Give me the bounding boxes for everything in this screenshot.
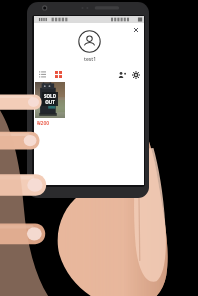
staticText: ₩200	[37, 120, 50, 127]
staticText: test1	[84, 56, 96, 63]
button[interactable]: Add friend	[116, 69, 127, 80]
staticText: OUT	[45, 99, 55, 105]
button[interactable]: Grid view	[53, 69, 64, 80]
button[interactable]: List view	[37, 69, 48, 80]
button[interactable]: Settings	[130, 69, 141, 80]
staticText: SOLD	[44, 93, 56, 99]
button[interactable]: Profile photo	[78, 30, 101, 53]
button[interactable]: Close	[131, 25, 141, 35]
button[interactable]: SOLD	[35, 82, 65, 127]
